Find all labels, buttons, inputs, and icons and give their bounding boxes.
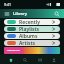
staticText: Made for you bbox=[7, 49, 20, 52]
button[interactable]: Search bbox=[54, 11, 60, 17]
staticText: Recently added bbox=[19, 19, 50, 25]
button[interactable]: Search bbox=[20, 55, 29, 64]
button[interactable]: Home bbox=[6, 55, 15, 64]
button[interactable]: Made for you bbox=[4, 47, 60, 54]
staticText: 9:41 bbox=[4, 2, 11, 7]
staticText: Albums bbox=[19, 33, 38, 39]
button[interactable]: Open Artists bbox=[50, 40, 57, 46]
button[interactable]: Playlists bbox=[4, 26, 60, 32]
button[interactable]: Albums bbox=[4, 33, 60, 39]
button[interactable]: Open Playlists bbox=[50, 26, 57, 32]
button[interactable]: Open Recently added bbox=[50, 19, 57, 25]
staticText: Artists bbox=[19, 40, 35, 46]
button[interactable]: Menu bbox=[4, 11, 10, 17]
button[interactable]: Artists bbox=[4, 40, 60, 46]
button[interactable]: Open Albums bbox=[50, 33, 57, 39]
staticText: Playlists bbox=[19, 26, 39, 32]
button[interactable]: Profile bbox=[49, 55, 58, 64]
button[interactable]: Recently added bbox=[4, 19, 60, 25]
button[interactable]: Library bbox=[35, 55, 44, 64]
staticText: Library bbox=[13, 11, 28, 17]
